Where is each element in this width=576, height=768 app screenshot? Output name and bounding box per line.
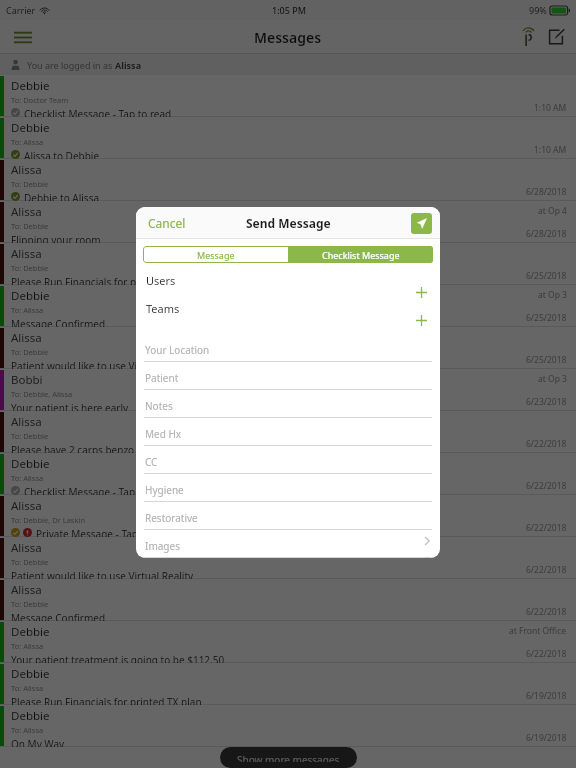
staticText: To: Alissa bbox=[11, 725, 44, 735]
button[interactable]: Alissa bbox=[0, 201, 576, 243]
button[interactable]: Debbie bbox=[0, 285, 576, 327]
button[interactable]: Alissa bbox=[0, 495, 576, 537]
staticText: Carrier bbox=[6, 4, 36, 16]
staticText: Messages bbox=[254, 28, 322, 47]
staticText: Alissa to Debbie bbox=[24, 149, 100, 159]
staticText: Alissa bbox=[11, 414, 42, 430]
button[interactable]: Images bbox=[136, 530, 440, 558]
button[interactable]: Send bbox=[411, 213, 432, 234]
button[interactable]: Debbie bbox=[0, 117, 576, 159]
staticText: Checklist Message - Tap to read bbox=[24, 107, 172, 117]
staticText: CC bbox=[145, 455, 158, 469]
button[interactable]: Show more messages bbox=[220, 747, 357, 768]
button[interactable]: Alissa bbox=[0, 243, 576, 285]
staticText: You are logged in as bbox=[27, 59, 115, 71]
staticText: Images bbox=[145, 539, 180, 553]
staticText: To: Alissa bbox=[11, 641, 44, 651]
staticText: To: Alissa bbox=[11, 473, 44, 483]
staticText: Users bbox=[146, 273, 176, 288]
staticText: at Front Office bbox=[509, 625, 567, 637]
button[interactable]: Broadcast bbox=[514, 23, 542, 51]
button[interactable]: Checklist Message bbox=[288, 246, 433, 263]
staticText: at Op 4 bbox=[538, 205, 567, 217]
button[interactable]: Patient bbox=[136, 362, 440, 390]
staticText: To: Debbie, Dr Laskin bbox=[11, 515, 86, 525]
staticText: Flipping your room bbox=[11, 233, 101, 243]
button[interactable]: Alissa bbox=[0, 537, 576, 579]
button[interactable]: CC bbox=[136, 446, 440, 474]
staticText: 6/22/2018 bbox=[526, 438, 567, 450]
staticText: Checklist Message - Tap to read bbox=[24, 485, 172, 495]
staticText: Message Confirmed bbox=[11, 317, 106, 327]
staticText: To: Debbie bbox=[11, 431, 49, 441]
staticText: Show more messages bbox=[237, 753, 340, 762]
staticText: Debbie bbox=[11, 120, 50, 136]
staticText: 6/25/2018 bbox=[526, 354, 567, 366]
button[interactable]: Alissa bbox=[0, 411, 576, 453]
staticText: Private Message - Tap to read bbox=[36, 527, 175, 537]
staticText: Checklist Message bbox=[322, 249, 400, 261]
button[interactable]: Bobbi bbox=[0, 369, 576, 411]
staticText: Your patient is here early bbox=[11, 401, 129, 411]
staticText: 6/22/2018 bbox=[526, 606, 567, 618]
staticText: Patient bbox=[145, 371, 179, 385]
staticText: To: Alissa bbox=[11, 137, 44, 147]
button[interactable]: Debbie bbox=[0, 705, 576, 747]
staticText: 6/22/2018 bbox=[526, 564, 567, 576]
button[interactable]: Debbie bbox=[0, 621, 576, 663]
staticText: Cancel bbox=[148, 215, 186, 231]
button[interactable]: Debbie bbox=[0, 453, 576, 495]
button[interactable]: Med Hx bbox=[136, 418, 440, 446]
staticText: Teams bbox=[146, 301, 180, 316]
staticText: 6/19/2018 bbox=[526, 690, 567, 702]
staticText: 6/23/2018 bbox=[526, 396, 567, 408]
staticText: 6/22/2018 bbox=[526, 522, 567, 534]
staticText: To: Alissa bbox=[11, 305, 44, 315]
button[interactable]: Notes bbox=[136, 390, 440, 418]
button[interactable]: Restorative bbox=[136, 502, 440, 530]
staticText: at Op 3 bbox=[538, 289, 567, 301]
staticText: To: Debbie bbox=[11, 179, 49, 189]
staticText: 99% bbox=[529, 4, 547, 16]
staticText: Please Run Financials for printed TX pla… bbox=[11, 275, 202, 285]
button[interactable]: Teams bbox=[136, 300, 440, 328]
button[interactable]: Debbie bbox=[0, 75, 576, 117]
staticText: Message Confirmed bbox=[11, 611, 106, 621]
staticText: 6/28/2018 bbox=[526, 186, 567, 198]
staticText: Send Message bbox=[246, 215, 331, 231]
staticText: 6/25/2018 bbox=[526, 312, 567, 324]
button[interactable]: Debbie bbox=[0, 663, 576, 705]
staticText: 6/28/2018 bbox=[526, 228, 567, 240]
staticText: Bobbi bbox=[11, 372, 43, 388]
staticText: Alissa bbox=[11, 204, 42, 220]
button[interactable]: Your Location bbox=[136, 334, 440, 362]
staticText: 1:10 AM bbox=[534, 144, 567, 156]
button[interactable]: Message bbox=[143, 246, 288, 263]
staticText: To: Debbie bbox=[11, 221, 49, 231]
staticText: Alissa bbox=[11, 330, 42, 346]
staticText: Debbie bbox=[11, 666, 50, 682]
staticText: Message bbox=[197, 249, 235, 261]
staticText: Alissa bbox=[11, 498, 42, 514]
button[interactable]: Compose bbox=[542, 23, 570, 51]
staticText: 6/19/2018 bbox=[526, 732, 567, 744]
staticText: 6/25/2018 bbox=[526, 270, 567, 282]
button[interactable]: Alissa bbox=[0, 327, 576, 369]
staticText: 1:05 PM bbox=[272, 4, 306, 16]
staticText: To: Debbie bbox=[11, 263, 49, 273]
button[interactable]: Hygiene bbox=[136, 474, 440, 502]
staticText: 6/22/2018 bbox=[526, 480, 567, 492]
staticText: Hygiene bbox=[145, 483, 184, 497]
staticText: Alissa bbox=[115, 59, 142, 71]
button[interactable]: Cancel bbox=[136, 207, 198, 239]
staticText: Debbie bbox=[11, 456, 50, 472]
button[interactable]: Users bbox=[136, 272, 440, 300]
staticText: Debbie to Alissa bbox=[24, 191, 100, 201]
staticText: Your patient treatment is going to be $1… bbox=[11, 653, 225, 663]
staticText: Patient would like to use Virtual Realit… bbox=[11, 359, 194, 369]
staticText: Please have 2 carps benzo ready bbox=[11, 443, 164, 453]
staticText: To: Debbie bbox=[11, 599, 49, 609]
button[interactable]: Alissa bbox=[0, 579, 576, 621]
button[interactable]: Menu bbox=[8, 22, 38, 52]
button[interactable]: Alissa bbox=[0, 159, 576, 201]
